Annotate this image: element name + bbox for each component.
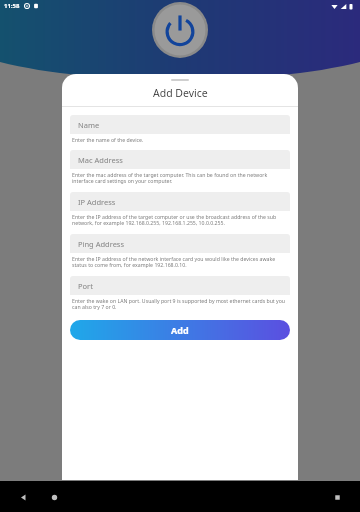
button[interactable]: Recent apps — [326, 486, 348, 508]
staticText: Enter the IP address of the network inte… — [72, 255, 290, 269]
staticText: Add — [171, 324, 189, 336]
button[interactable]: Name — [70, 115, 290, 134]
staticText: Mac Address — [78, 155, 123, 165]
staticText: IP Address — [78, 197, 116, 207]
staticText: 11:58 — [4, 2, 20, 10]
staticText: Name — [78, 120, 100, 130]
staticText: Enter the wake on LAN port. Usually port… — [72, 297, 290, 311]
button[interactable]: IP Address — [70, 192, 290, 211]
staticText: Enter the mac address of the target comp… — [72, 171, 290, 185]
staticText: Port — [78, 281, 93, 291]
button[interactable]: Back — [12, 486, 34, 508]
button[interactable]: Port — [70, 276, 290, 295]
button[interactable]: Ping Address — [70, 234, 290, 253]
staticText: Add Device — [153, 86, 208, 100]
button[interactable]: Home — [43, 486, 65, 508]
staticText: Ping Address — [78, 239, 125, 249]
button[interactable]: Mac Address — [70, 150, 290, 169]
staticText: Enter the name of the device. — [72, 136, 144, 143]
button[interactable]: Power — [152, 2, 208, 58]
staticText: Enter the IP address of the target compu… — [72, 213, 290, 227]
button[interactable]: Add — [70, 320, 290, 340]
